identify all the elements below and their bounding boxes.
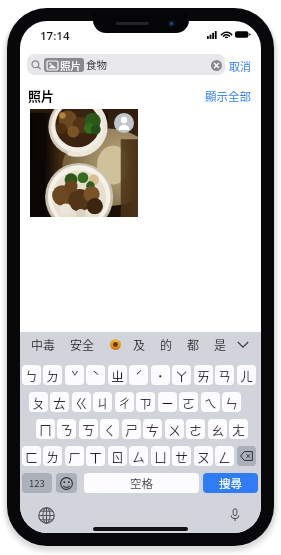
staticText: 食物 [86,57,107,72]
button[interactable]: ㄌ [43,446,62,466]
button[interactable]: Emoji suggestion [107,336,123,352]
button[interactable]: ㄗ [136,392,155,412]
staticText: ㄑ [103,420,117,439]
staticText: 空格 [130,475,153,492]
staticText: 顯示全部 [205,88,251,105]
staticText: ㄎ [82,420,96,439]
button[interactable]: ㄜ [186,419,205,439]
staticText: ㄥ [218,447,232,466]
button[interactable]: ㄧ [158,392,177,412]
button[interactable]: ˇ [65,365,84,385]
staticText: ㄘ [146,420,160,439]
button[interactable]: ㄚ [172,365,191,385]
staticText: ㄢ [218,366,232,385]
staticText: 123 [29,476,45,490]
button[interactable]: ㄟ [201,392,220,412]
staticText: ˋ [92,366,100,385]
staticText: ㄖ [111,447,125,466]
button[interactable]: ㄘ [143,419,162,439]
button[interactable]: ㄡ [194,446,213,466]
staticText: ㄙ [132,447,146,466]
button[interactable]: ㄆ [29,392,48,412]
button[interactable]: 顯示全部 [204,87,252,106]
button[interactable]: ˊ [129,365,148,385]
staticText: ㄤ [232,420,246,439]
button[interactable]: 照片 [27,54,225,75]
button[interactable]: ㄅ [22,365,41,385]
button[interactable]: 中毒 [29,336,58,353]
button[interactable]: ㄦ [237,365,256,385]
button[interactable]: ㄉ [43,365,62,385]
staticText: ㄞ [197,366,211,385]
staticText: 搜尋 [219,475,242,492]
button[interactable]: 的 [158,336,175,353]
button[interactable]: ˙ [151,365,170,385]
button[interactable]: ㄨ [165,419,184,439]
staticText: ㄇ [39,420,53,439]
button[interactable]: Backspace [237,446,256,466]
button[interactable]: 搜尋 [203,473,258,493]
button[interactable]: ㄎ [79,419,98,439]
staticText: ㄦ [240,366,254,385]
staticText: ㄟ [204,393,218,412]
button[interactable]: ㄓ [108,365,127,385]
button[interactable]: ㄞ [194,365,213,385]
button[interactable]: ㄔ [115,392,134,412]
button[interactable]: ㄛ [179,392,198,412]
staticText: ㄛ [182,393,196,412]
staticText: ㄗ [139,393,153,412]
staticText: ㄆ [32,393,46,412]
button[interactable]: 都 [185,336,202,353]
staticText: 照片 [28,86,55,105]
button[interactable]: Emoji keyboard [56,473,77,493]
button[interactable]: ㄑ [100,419,119,439]
button[interactable]: 123 [22,473,52,493]
button[interactable]: ㄋ [57,419,76,439]
button[interactable] [30,109,138,217]
staticText: ㄡ [197,447,211,466]
staticText: 取消 [229,58,251,74]
staticText: ㄏ [68,447,82,466]
button[interactable]: ㄙ [129,446,148,466]
button[interactable]: ㄊ [50,392,69,412]
button[interactable]: Clear [210,59,222,71]
button[interactable]: ㄇ [36,419,55,439]
button[interactable]: ㄠ [208,419,227,439]
button[interactable]: 安全 [68,336,97,353]
staticText: ㄝ [175,447,189,466]
staticText: ㄊ [53,393,67,412]
button[interactable]: 及 [131,336,148,353]
staticText: ˇ [71,366,79,385]
button[interactable]: ˋ [86,365,105,385]
button[interactable]: ㄈ [22,446,41,466]
button[interactable]: Dictation [224,504,246,526]
button[interactable]: ㄐ [93,392,112,412]
button[interactable]: 取消 [227,56,253,76]
staticText: ˙ [157,366,164,385]
button[interactable]: ㄝ [172,446,191,466]
button[interactable]: 空格 [84,473,199,493]
button[interactable]: ㄍ [72,392,91,412]
button[interactable]: ㄩ [151,446,170,466]
button[interactable]: ㄖ [108,446,127,466]
staticText: ㄠ [211,420,225,439]
button[interactable]: ㄤ [229,419,248,439]
button[interactable]: ㄥ [215,446,234,466]
button[interactable]: ㄕ [122,419,141,439]
staticText: ㄕ [125,420,139,439]
button[interactable]: ㄒ [86,446,105,466]
staticText: 照片 [60,58,81,72]
staticText: ㄚ [175,366,189,385]
staticText: ㄣ [225,393,239,412]
staticText: ㄅ [25,366,39,385]
button[interactable]: Hide suggestions [232,334,254,354]
staticText: ㄓ [111,366,125,385]
button[interactable]: ㄢ [215,365,234,385]
staticText: ㄉ [46,366,60,385]
staticText: ㄋ [60,420,74,439]
button[interactable]: ㄣ [222,392,241,412]
button[interactable]: ㄏ [65,446,84,466]
button[interactable]: Switch keyboard [35,504,57,526]
staticText: ㄈ [25,447,39,466]
button[interactable]: 是 [212,336,229,353]
